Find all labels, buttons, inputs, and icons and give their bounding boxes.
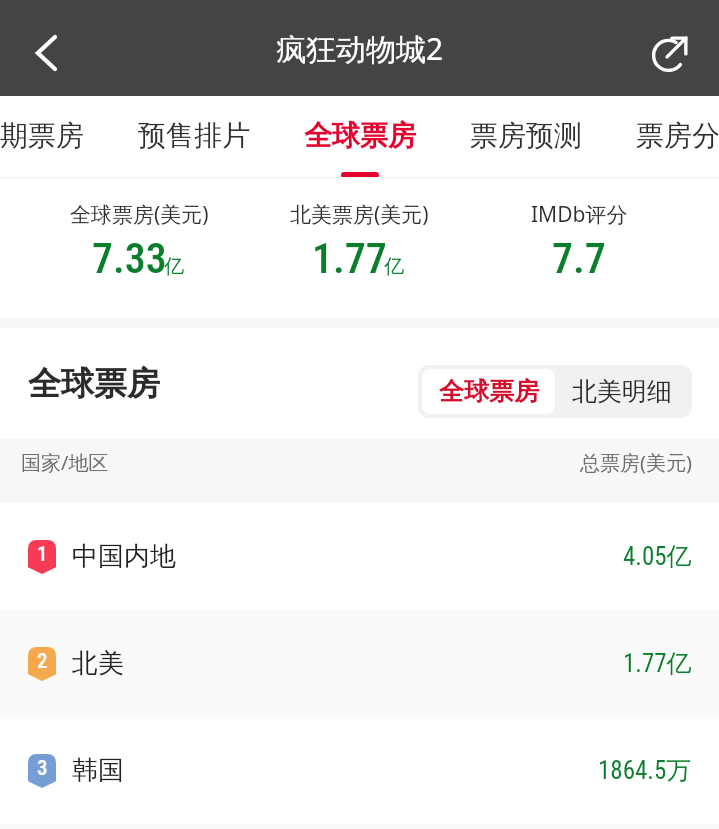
staticText: 全球票房 bbox=[304, 118, 416, 153]
staticText: 全球票房 bbox=[439, 376, 539, 407]
staticText: 全球票房 bbox=[28, 363, 160, 405]
staticText: 7.7 bbox=[552, 234, 606, 283]
button[interactable]: 北美明细 bbox=[555, 369, 688, 414]
staticText: 近期票房 bbox=[0, 118, 84, 153]
staticText: 1 bbox=[37, 542, 48, 567]
button[interactable]: 近期票房 bbox=[0, 96, 111, 178]
staticText: 韩国 bbox=[72, 754, 124, 787]
staticText: 7.33 bbox=[92, 234, 167, 283]
staticText: 1.77 bbox=[312, 234, 387, 283]
button[interactable]: 2 bbox=[0, 610, 719, 717]
staticText: 北美票房(美元) bbox=[290, 200, 429, 229]
button[interactable]: 预售排片 bbox=[111, 96, 277, 178]
button[interactable]: Back bbox=[12, 18, 82, 88]
staticText: 1864.5万 bbox=[598, 755, 692, 786]
staticText: 3 bbox=[37, 756, 48, 781]
button[interactable]: 3 bbox=[0, 717, 719, 824]
staticText: 中国内地 bbox=[72, 540, 176, 573]
button[interactable]: 全球票房 bbox=[277, 96, 443, 178]
staticText: 1.77亿 bbox=[623, 648, 692, 679]
staticText: 疯狂动物城2 bbox=[276, 28, 444, 69]
staticText: IMDb评分 bbox=[531, 200, 628, 229]
button[interactable]: 1 bbox=[0, 503, 719, 610]
staticText: 亿 bbox=[384, 254, 404, 279]
staticText: 亿 bbox=[164, 254, 184, 279]
staticText: 全球票房(美元) bbox=[70, 200, 209, 229]
staticText: 北美 bbox=[72, 647, 124, 680]
button[interactable]: Share bbox=[636, 18, 706, 88]
button[interactable]: 票房分析 bbox=[609, 96, 719, 178]
button[interactable]: 全球票房 bbox=[422, 369, 555, 414]
staticText: 4.05亿 bbox=[623, 541, 692, 572]
staticText: 票房预测 bbox=[470, 118, 582, 153]
staticText: 预售排片 bbox=[138, 118, 250, 153]
staticText: 国家/地区 bbox=[21, 449, 109, 476]
button[interactable]: 票房预测 bbox=[443, 96, 609, 178]
staticText: 票房分析 bbox=[636, 118, 719, 153]
staticText: 北美明细 bbox=[572, 376, 672, 407]
staticText: 总票房(美元) bbox=[580, 449, 692, 476]
staticText: 2 bbox=[37, 649, 48, 674]
